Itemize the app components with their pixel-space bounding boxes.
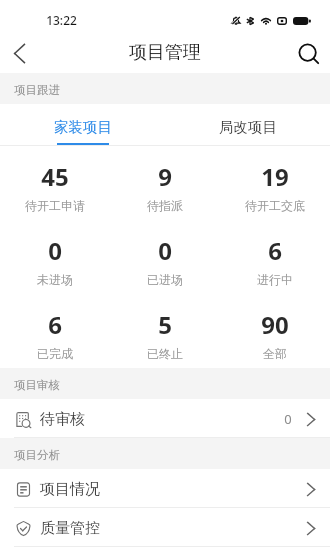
- button[interactable]: 9: [110, 146, 220, 220]
- staticText: 6: [268, 234, 282, 267]
- staticText: 待指派: [147, 198, 183, 213]
- staticText: 0: [48, 234, 62, 267]
- staticText: 6: [48, 308, 62, 341]
- staticText: 0: [284, 410, 292, 428]
- button[interactable]: 5: [110, 294, 220, 368]
- staticText: 进行中: [257, 272, 293, 287]
- staticText: 家装项目: [54, 118, 112, 136]
- staticText: 项目情况: [40, 480, 100, 499]
- button[interactable]: Search: [290, 33, 330, 73]
- staticText: 9: [158, 160, 172, 193]
- staticText: 质量管控: [40, 519, 100, 538]
- button[interactable]: 6: [220, 220, 330, 294]
- button[interactable]: 0: [110, 220, 220, 294]
- staticText: 待开工交底: [245, 198, 305, 213]
- staticText: 45: [41, 160, 69, 193]
- staticText: 0: [158, 234, 172, 267]
- staticText: 项目分析: [14, 448, 60, 462]
- button[interactable]: Back: [0, 34, 38, 72]
- staticText: 已完成: [37, 346, 73, 361]
- button[interactable]: 90: [220, 294, 330, 368]
- button[interactable]: 家装项目: [0, 104, 165, 145]
- button[interactable]: 待审核: [0, 399, 330, 437]
- staticText: 已终止: [147, 346, 183, 361]
- staticText: 全部: [263, 346, 287, 361]
- staticText: 项目审核: [14, 378, 60, 392]
- staticText: 待开工申请: [25, 198, 85, 213]
- button[interactable]: 0: [0, 220, 110, 294]
- button[interactable]: 项目情况: [0, 469, 330, 507]
- staticText: 项目跟进: [14, 83, 60, 97]
- button[interactable]: 45: [0, 146, 110, 220]
- staticText: 已进场: [147, 272, 183, 287]
- staticText: 5: [158, 308, 172, 341]
- button[interactable]: 19: [220, 146, 330, 220]
- staticText: 待审核: [40, 410, 85, 429]
- button[interactable]: 局改项目: [165, 104, 330, 145]
- button[interactable]: 质量管控: [0, 508, 330, 546]
- staticText: 19: [261, 160, 289, 193]
- button[interactable]: 6: [0, 294, 110, 368]
- staticText: 13:22: [46, 12, 77, 28]
- staticText: 未进场: [37, 272, 73, 287]
- staticText: 项目管理: [129, 41, 201, 64]
- staticText: 局改项目: [219, 118, 277, 136]
- staticText: 90: [261, 308, 289, 341]
